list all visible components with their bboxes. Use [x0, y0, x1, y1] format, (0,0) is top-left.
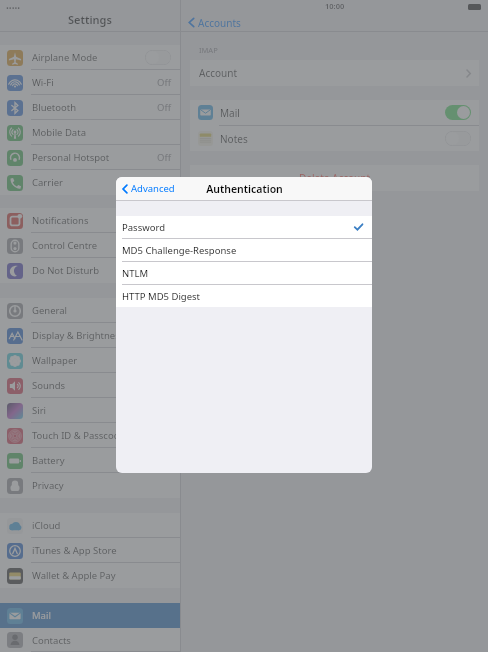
button[interactable]: Privacy — [0, 473, 180, 498]
button[interactable]: Wi-Fi — [0, 70, 180, 95]
button[interactable]: Display & Brightness — [0, 323, 180, 348]
button[interactable]: Mail — [0, 603, 180, 628]
button[interactable]: Wallet & Apple Pay — [0, 563, 180, 588]
staticText: Touch ID & Passcode — [32, 429, 171, 442]
button[interactable]: Siri — [0, 398, 180, 423]
button[interactable]: NTLM — [116, 262, 372, 284]
button[interactable]: HTTP MD5 Digest — [116, 285, 372, 307]
staticText: Authentication — [206, 182, 283, 196]
staticText: Sounds — [32, 379, 171, 392]
staticText: ••••• — [6, 3, 21, 13]
staticText: Mobile Data — [32, 126, 171, 139]
staticText: Privacy — [32, 479, 171, 492]
button[interactable]: Do Not Disturb — [0, 258, 180, 283]
staticText: Mail — [32, 609, 171, 622]
staticText: Mail — [220, 106, 445, 120]
staticText: Notifications — [32, 214, 171, 227]
button[interactable]: iCloud — [0, 513, 180, 538]
staticText: General — [32, 304, 171, 317]
staticText: Settings — [68, 12, 112, 27]
staticText: Off — [157, 101, 171, 114]
button[interactable]: Control Centre — [0, 233, 180, 258]
staticText: Wi-Fi — [32, 76, 157, 89]
button[interactable] — [445, 105, 471, 120]
button[interactable]: Password — [116, 216, 372, 238]
staticText: Personal Hotspot — [32, 151, 157, 164]
staticText: IMAP — [199, 45, 218, 55]
button[interactable]: Battery — [0, 448, 180, 473]
button[interactable]: MD5 Challenge-Response — [116, 239, 372, 261]
staticText: Display & Brightness — [32, 329, 171, 342]
staticText: iTunes & App Store — [32, 544, 171, 557]
button[interactable]: Airplane Mode — [0, 45, 180, 70]
staticText: Battery — [32, 454, 171, 467]
staticText: 10:00 — [325, 1, 345, 11]
button[interactable]: Notifications — [0, 208, 180, 233]
button[interactable]: Notes — [190, 126, 479, 151]
staticText: Contacts — [32, 634, 171, 647]
staticText: Airplane Mode — [32, 51, 145, 64]
button[interactable]: Mobile Data — [0, 120, 180, 145]
staticText: Control Centre — [32, 239, 171, 252]
staticText: Account — [199, 66, 466, 80]
button[interactable]: Advanced — [120, 179, 177, 198]
staticText: HTTP MD5 Digest — [122, 290, 363, 303]
staticText: Notes — [220, 132, 445, 146]
staticText: NTLM — [122, 267, 363, 280]
button[interactable]: Delete Account — [190, 165, 479, 191]
staticText: Wallpaper — [32, 354, 171, 367]
staticText: Advanced — [131, 182, 175, 195]
button[interactable]: Carrier — [0, 170, 180, 195]
button[interactable]: Account — [190, 60, 479, 86]
staticText: Wallet & Apple Pay — [32, 569, 171, 582]
staticText: Delete Account — [190, 171, 479, 185]
button[interactable]: Contacts — [0, 628, 180, 652]
button[interactable]: Mail — [190, 100, 479, 125]
staticText: Off — [157, 151, 171, 164]
button[interactable]: Touch ID & Passcode — [0, 423, 180, 448]
staticText: iCloud — [32, 519, 171, 532]
button[interactable]: iTunes & App Store — [0, 538, 180, 563]
button[interactable]: Accounts — [186, 14, 243, 31]
button[interactable]: Wallpaper — [0, 348, 180, 373]
staticText: Accounts — [198, 16, 241, 29]
button[interactable]: General — [0, 298, 180, 323]
staticText: Off — [157, 76, 171, 89]
staticText: Bluetooth — [32, 101, 157, 114]
staticText: Siri — [32, 404, 171, 417]
staticText: Password — [122, 221, 354, 234]
button[interactable]: Sounds — [0, 373, 180, 398]
staticText: Carrier — [32, 176, 171, 189]
staticText: Do Not Disturb — [32, 264, 171, 277]
staticText: MD5 Challenge-Response — [122, 244, 363, 257]
button[interactable]: Bluetooth — [0, 95, 180, 120]
button[interactable]: Personal Hotspot — [0, 145, 180, 170]
